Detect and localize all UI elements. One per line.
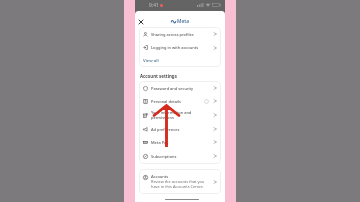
button[interactable]: Sharing across profiles [139,27,221,41]
staticText: Personal details [151,99,181,104]
button[interactable]: Personal details [139,95,221,107]
button[interactable]: Accounts [139,169,221,194]
staticText: Subscriptions [151,154,177,159]
button[interactable]: View all [139,54,221,67]
staticText: Meta [177,18,190,25]
staticText: Sharing across profiles [151,32,194,37]
staticText: View all [143,58,159,64]
button[interactable]: Subscriptions [139,149,221,163]
button[interactable]: Your information and permissions [139,107,221,123]
staticText: Ad preferences [151,127,180,132]
button[interactable]: Logging in with accounts [139,41,221,54]
staticText: Accounts [151,174,169,179]
staticText: Account settings [140,73,177,79]
button[interactable]: Password and security [139,81,221,95]
staticText: Meta Pay [151,140,169,145]
staticText: Review the accounts that you have in thi… [151,179,205,189]
button[interactable]: Meta Pay [139,135,221,149]
staticText: Logging in with accounts [151,45,199,50]
staticText: Your information and permissions [151,110,192,120]
staticText: Password and security [151,86,194,91]
button[interactable]: Close [135,16,147,28]
staticText: 9:41 [149,2,159,9]
button[interactable]: Ad preferences [139,123,221,135]
